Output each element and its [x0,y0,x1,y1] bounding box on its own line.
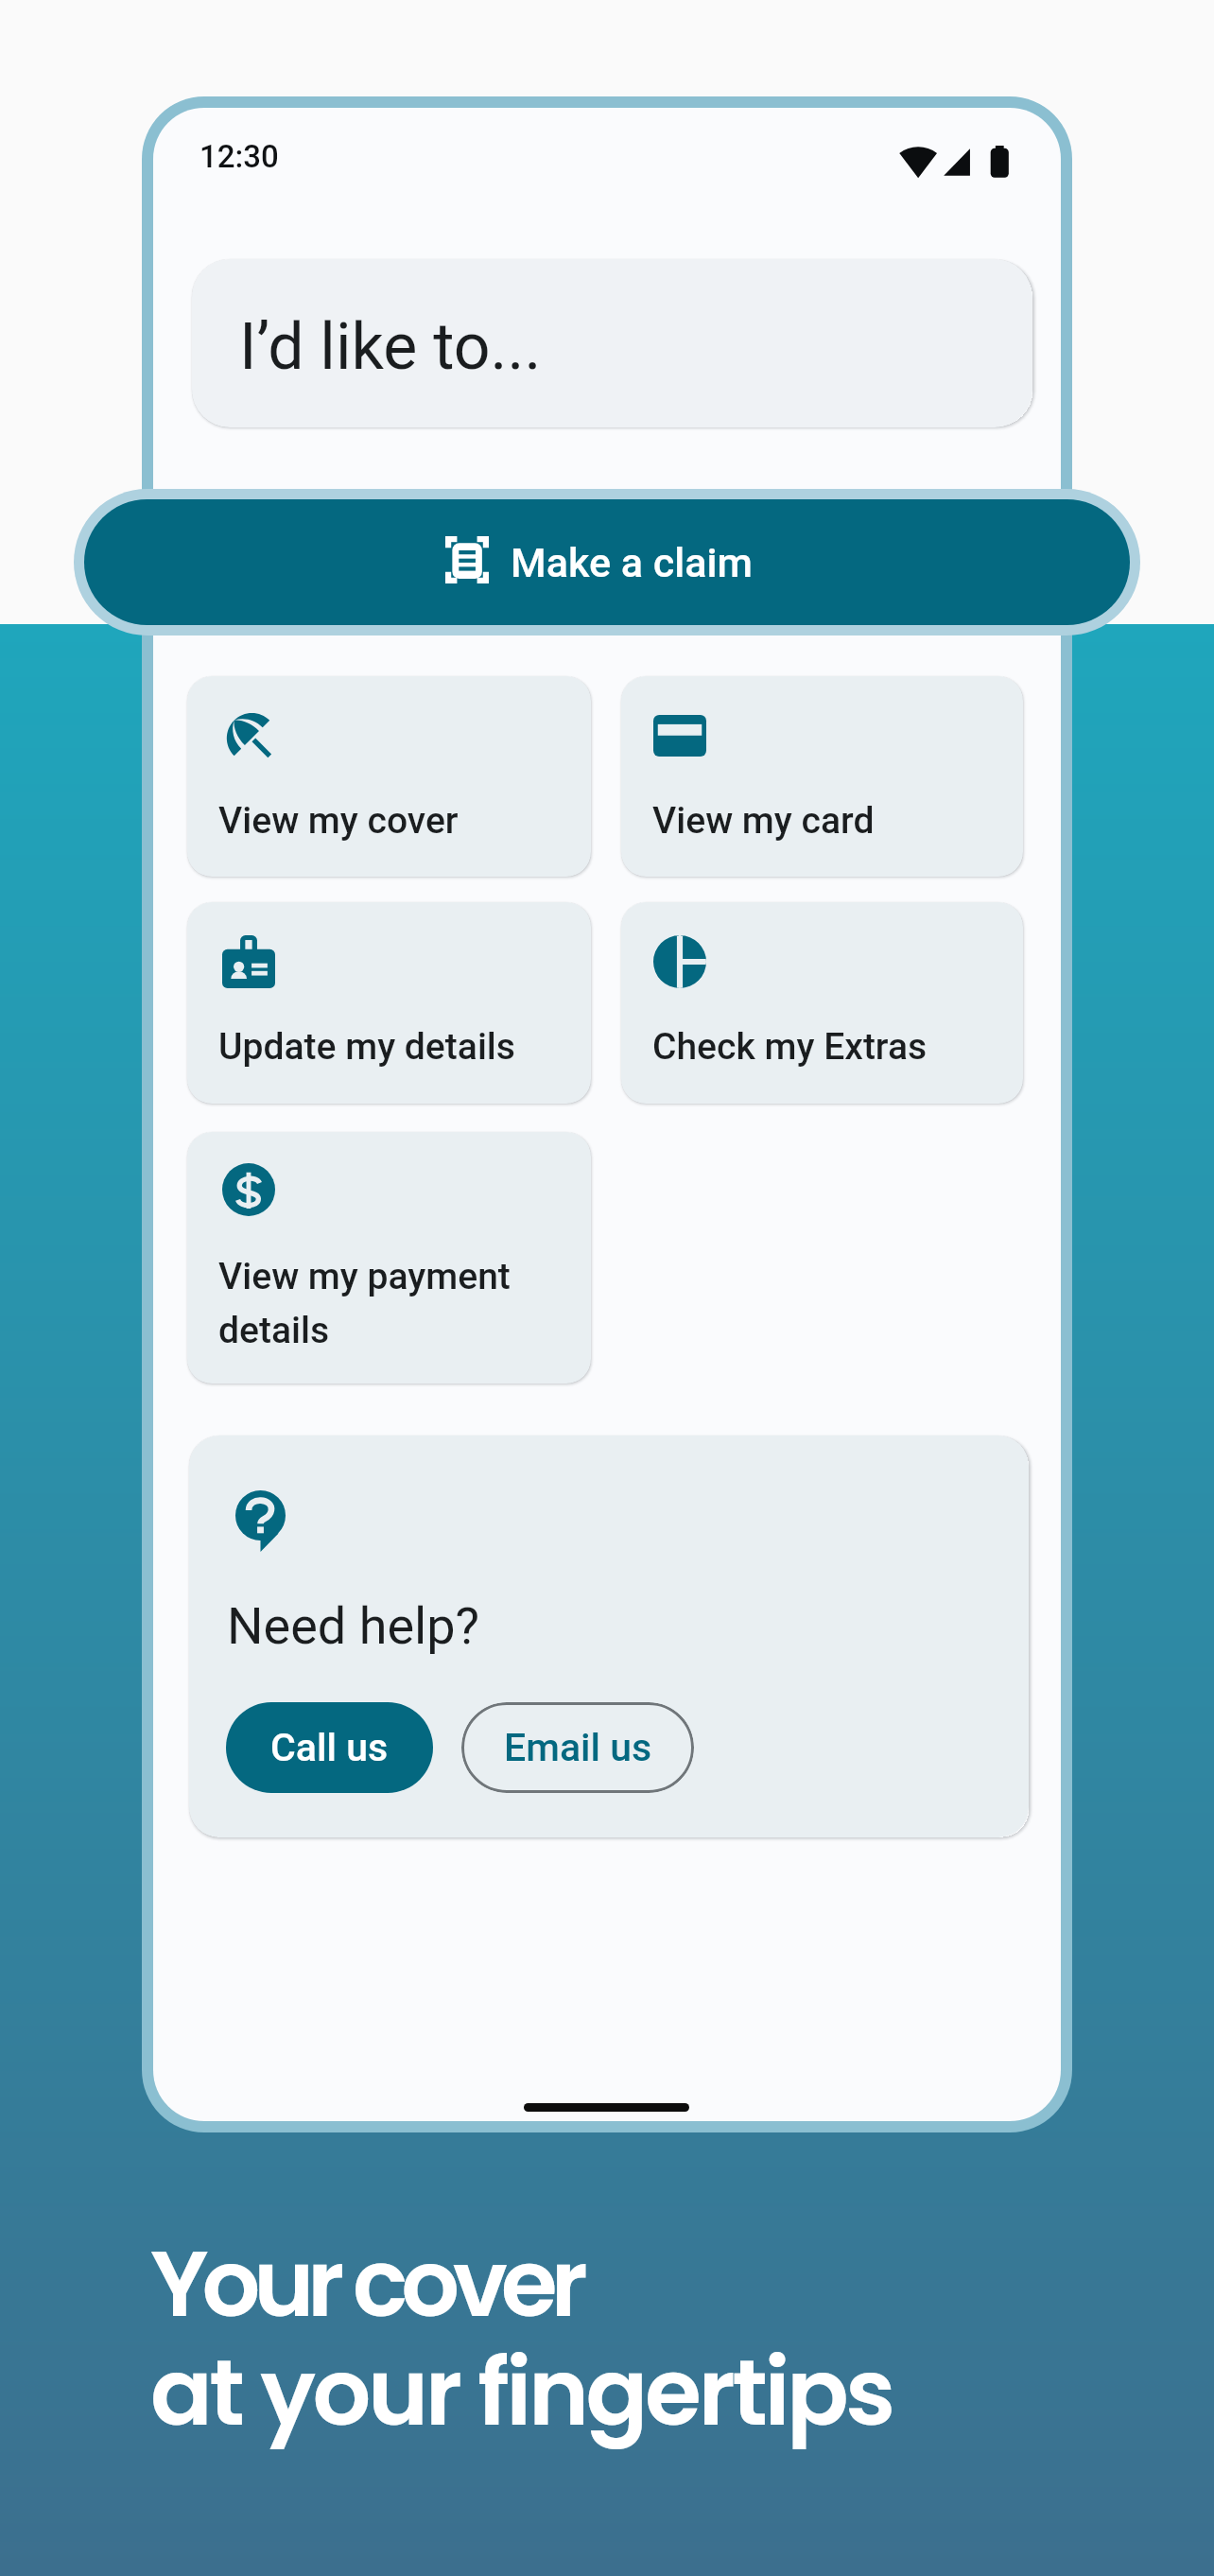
button[interactable]: Update my details [187,902,591,1104]
button[interactable]: Email us [461,1702,694,1793]
staticText: Your cover [150,2219,581,2348]
staticText: I’d like to... [239,309,542,385]
button[interactable]: View my card [621,676,1023,877]
staticText: Update my details [218,1025,575,1069]
staticText: at your fingertips [150,2328,893,2457]
staticText: View my card [652,799,1007,843]
staticText: Check my Extras [652,1025,1007,1069]
staticText: Need help? [227,1596,479,1656]
button[interactable]: Check my Extras [621,902,1023,1104]
button[interactable]: I’d like to... [192,259,1032,427]
staticText: Email us [504,1725,652,1770]
staticText: Call us [270,1725,389,1770]
staticText: Make a claim [511,539,753,586]
staticText: 12:30 [199,138,279,175]
staticText: View my cover [218,799,575,843]
button[interactable]: View my payment details [187,1132,591,1384]
button[interactable]: Call us [226,1702,433,1793]
button[interactable]: Make a claim [84,499,1130,625]
button[interactable]: View my cover [187,676,591,877]
staticText: View my payment details [218,1255,575,1352]
